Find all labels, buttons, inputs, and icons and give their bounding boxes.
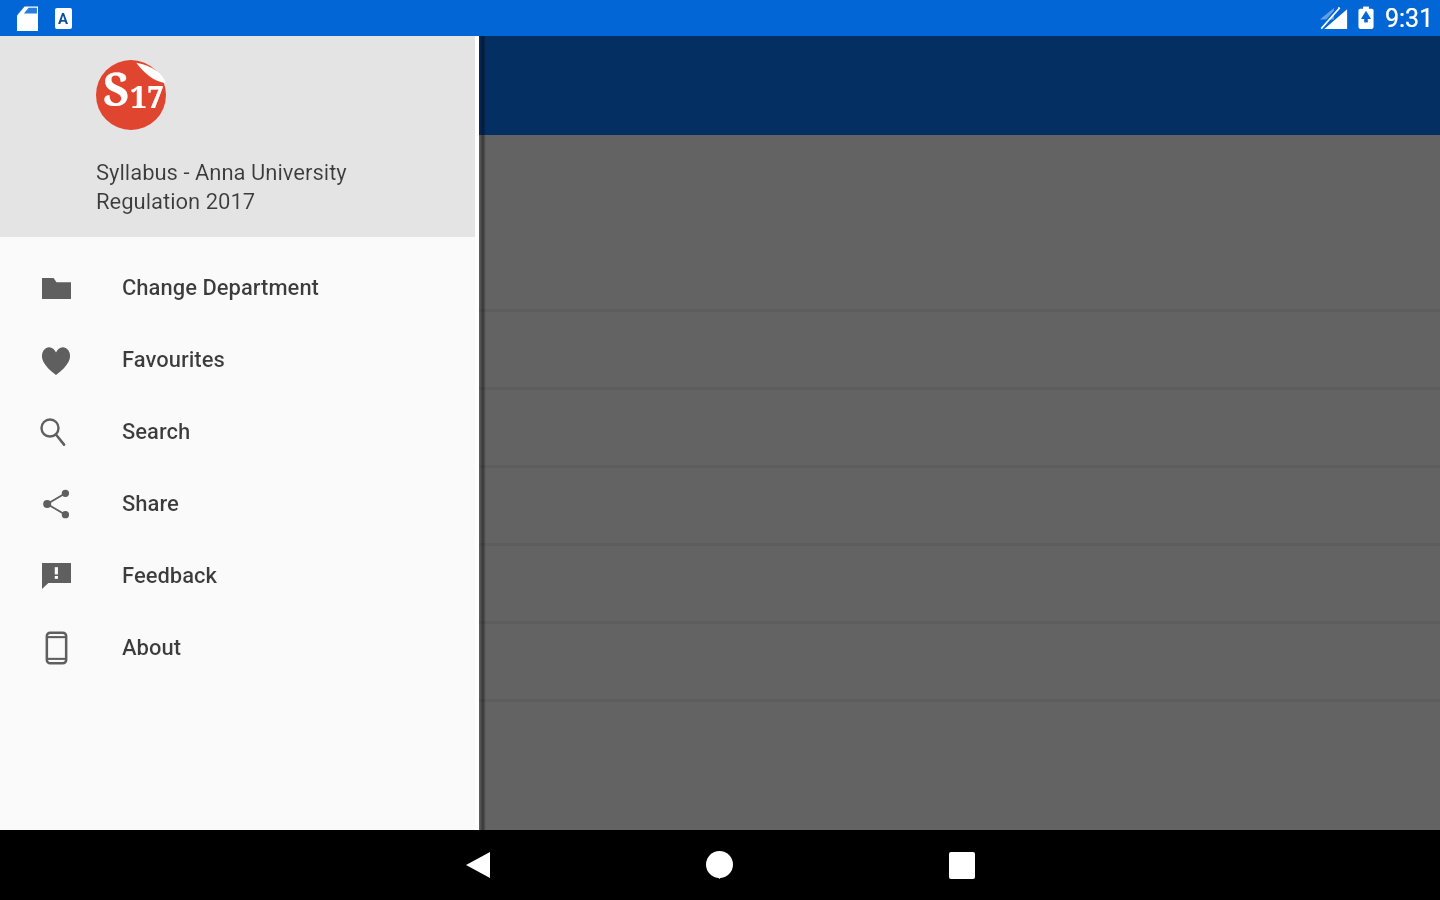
staticText: Search <box>122 419 191 445</box>
button[interactable]: Back <box>452 839 504 891</box>
staticText: Share <box>122 491 179 517</box>
staticText: Favourites <box>122 347 225 373</box>
button[interactable]: Share <box>0 468 479 540</box>
staticText: A <box>58 10 69 28</box>
staticText: 17 <box>130 76 164 117</box>
staticText: About <box>122 635 181 661</box>
staticText: S <box>103 58 130 118</box>
staticText: Change Department <box>122 275 319 301</box>
button[interactable]: Favourites <box>0 324 479 396</box>
staticText: Feedback <box>122 563 218 589</box>
button[interactable]: Home <box>693 839 745 891</box>
button[interactable]: Recents <box>936 839 988 891</box>
button[interactable]: Change Department <box>0 252 479 324</box>
button[interactable]: About <box>0 612 479 684</box>
button[interactable]: Feedback <box>0 540 479 612</box>
button[interactable]: Search <box>0 396 479 468</box>
staticText: Syllabus - Anna University Regulation 20… <box>96 160 347 214</box>
staticText: 9:31 <box>1385 4 1434 33</box>
